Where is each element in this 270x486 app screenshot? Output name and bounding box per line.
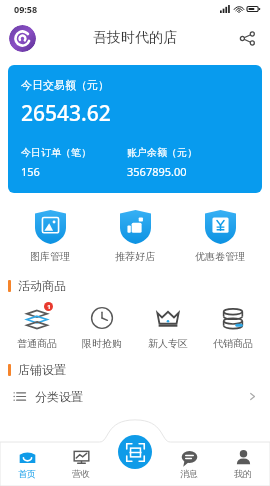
button[interactable]: 分类设置 [0, 381, 270, 411]
button[interactable]: 新人专区 [137, 301, 199, 352]
button[interactable]: 我的 [216, 442, 270, 486]
staticText: 156 [21, 164, 40, 179]
button[interactable]: 今日交易额（元） [8, 65, 262, 193]
button[interactable]: Scan [118, 435, 152, 469]
staticText: 3567895.00 [127, 164, 187, 179]
staticText: 首页 [18, 468, 36, 479]
staticText: 店铺设置 [18, 362, 66, 377]
button[interactable]: 优惠卷管理 [181, 207, 259, 266]
button[interactable]: 消息 [162, 442, 216, 486]
staticText: 今日订单（笔） [21, 146, 91, 159]
button[interactable]: 代销商品 [202, 301, 264, 352]
staticText: 活动商品 [18, 278, 66, 293]
button[interactable]: 首页 [0, 442, 54, 486]
button[interactable]: 限时抢购 [71, 301, 133, 352]
staticText: 分类设置 [35, 389, 83, 404]
staticText: 吾技时代的店 [93, 29, 177, 47]
staticText: 今日交易额（元） [21, 78, 109, 92]
staticText: 图库管理 [30, 250, 70, 263]
button[interactable]: Shop logo [9, 25, 36, 52]
staticText: 26543.62 [21, 99, 111, 128]
button[interactable]: 营收 [54, 442, 108, 486]
button[interactable]: 图库管理 [11, 207, 89, 266]
button[interactable]: 1 [6, 301, 68, 352]
staticText: 优惠卷管理 [195, 250, 245, 263]
button[interactable]: Share [234, 25, 260, 51]
staticText: 代销商品 [213, 337, 253, 350]
staticText: 1 [47, 303, 51, 311]
staticText: 我的 [234, 468, 252, 479]
staticText: 推荐好店 [115, 250, 155, 263]
staticText: 消息 [180, 468, 198, 479]
staticText: 营收 [72, 468, 90, 479]
staticText: 普通商品 [17, 337, 57, 350]
staticText: 09:58 [14, 3, 38, 15]
button[interactable]: 推荐好店 [96, 207, 174, 266]
staticText: 新人专区 [148, 337, 188, 350]
staticText: 账户余额（元） [127, 146, 197, 159]
staticText: 限时抢购 [82, 337, 122, 350]
